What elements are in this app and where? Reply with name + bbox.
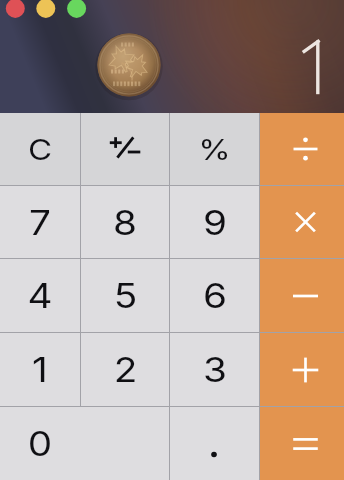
button[interactable]: Subtract [260,259,344,332]
other: Display 1 [0,0,344,113]
staticText: 7 [29,202,51,243]
button[interactable]: 2 [81,333,169,406]
button[interactable]: 9 [170,186,259,258]
staticText: 5 [113,275,137,316]
staticText: C [27,132,53,167]
other: Window controls [0,0,344,113]
button[interactable]: Toggle sign [81,113,169,185]
staticText: 0 [27,423,53,464]
button[interactable]: 6 [170,259,259,332]
button[interactable]: 7 [0,186,80,258]
button[interactable]: 4 [0,259,80,332]
staticText: 4 [27,275,53,316]
staticText: 6 [202,275,228,316]
staticText: 2 [113,349,137,390]
staticText: 9 [202,202,228,243]
button[interactable]: Decimal point [170,407,259,480]
button[interactable]: Multiply [260,186,344,258]
button[interactable]: 5 [81,259,169,332]
button[interactable]: Add [260,333,344,406]
button[interactable]: 0 [0,407,169,480]
staticText: 1 [32,349,48,390]
button[interactable]: Percent [170,113,259,185]
button[interactable]: Divide [260,113,344,185]
button[interactable]: 3 [170,333,259,406]
staticText: % [198,132,231,167]
button[interactable]: 1 [0,333,80,406]
staticText: 3 [202,349,228,390]
other: Coin [0,0,344,113]
button[interactable]: Clear [0,113,80,185]
staticText: 8 [112,202,138,243]
button[interactable]: Equals [260,407,344,480]
button[interactable]: 8 [81,186,169,258]
